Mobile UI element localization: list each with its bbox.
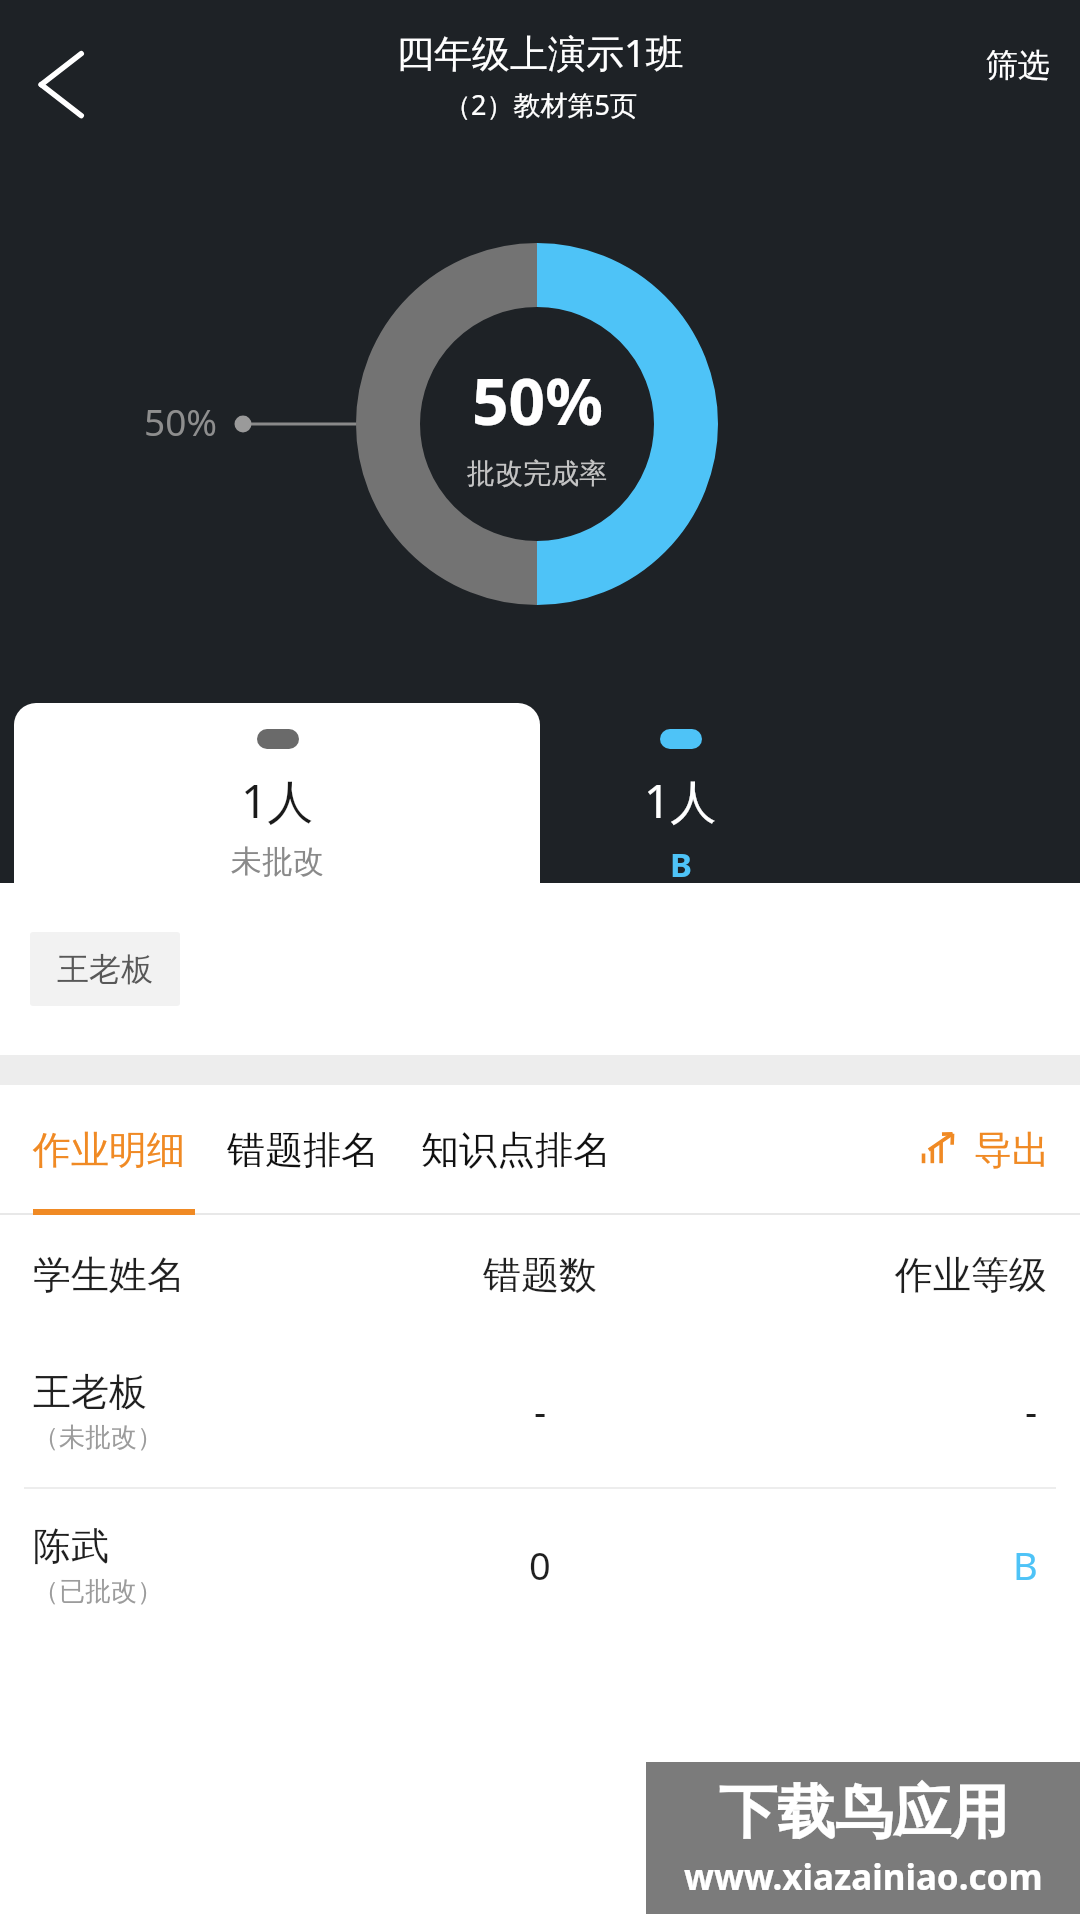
staticText: 下载鸟应用	[719, 1776, 1009, 1849]
staticText: 王老板	[57, 949, 153, 989]
staticText: 错题数	[483, 1251, 597, 1299]
staticText: 批改完成率	[467, 456, 607, 491]
staticText: B	[670, 842, 692, 883]
button[interactable]: 错题排名	[227, 1110, 379, 1190]
button[interactable]: 陈武	[0, 1489, 1080, 1641]
staticText: -	[1025, 1385, 1038, 1437]
staticText: 陈武	[33, 1522, 109, 1570]
staticText: B	[1013, 1539, 1038, 1591]
staticText: 作业等级	[895, 1251, 1047, 1299]
button[interactable]: 筛选	[978, 37, 1058, 93]
staticText: 1人	[241, 769, 314, 832]
staticText: 导出	[974, 1126, 1050, 1174]
button[interactable]: 王老板	[30, 932, 180, 1006]
staticText: （2）教材第5页	[444, 86, 637, 123]
staticText: 作业明细	[33, 1126, 185, 1174]
staticText: （已批改）	[33, 1575, 163, 1608]
staticText: www.xiazainiao.com	[684, 1853, 1043, 1901]
button[interactable]: 1人	[14, 703, 540, 883]
staticText: -	[534, 1385, 547, 1437]
staticText: 未批改	[231, 842, 324, 881]
staticText: 50%	[472, 357, 603, 444]
button[interactable]: 导出	[916, 1122, 1054, 1178]
staticText: 王老板	[33, 1368, 147, 1416]
staticText: 错题排名	[227, 1126, 379, 1174]
staticText: 0	[529, 1539, 551, 1591]
staticText: （未批改）	[33, 1421, 163, 1454]
button[interactable]: Back	[16, 44, 94, 122]
staticText: 筛选	[986, 45, 1050, 85]
staticText: 四年级上演示1班	[396, 26, 684, 78]
staticText: 50%	[144, 396, 218, 446]
button[interactable]: 王老板	[0, 1335, 1080, 1487]
button[interactable]: 知识点排名	[421, 1110, 611, 1190]
staticText: 1人	[644, 769, 717, 832]
staticText: 知识点排名	[421, 1126, 611, 1174]
button[interactable]: 作业明细	[33, 1110, 185, 1190]
staticText: 学生姓名	[33, 1251, 185, 1299]
button[interactable]: 1人	[540, 703, 820, 883]
